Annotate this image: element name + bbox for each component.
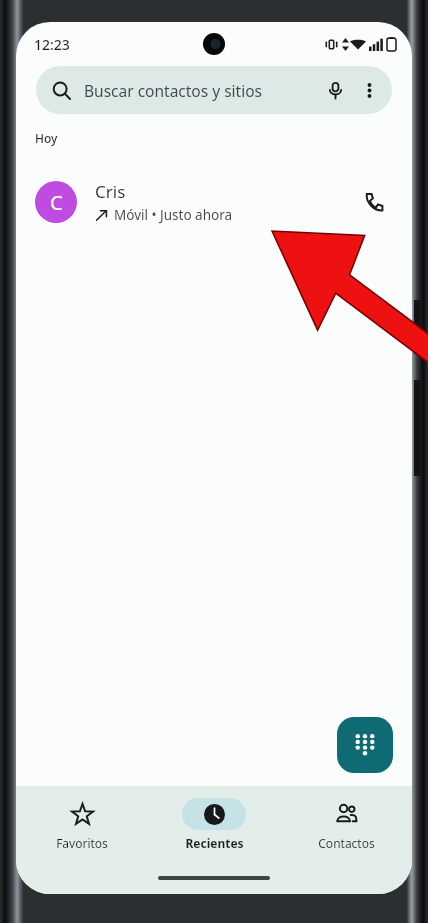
staticText: Cris [95,180,126,203]
button[interactable]: Recientes [148,798,280,851]
button[interactable]: Más opciones [352,73,386,107]
button[interactable]: Favoritos [16,798,148,851]
staticText: Hoy [35,130,58,146]
staticText: Buscar contactos y sitios [84,80,318,101]
button[interactable]: C [16,166,412,238]
button[interactable]: Teclado de marcación [337,717,393,773]
button[interactable]: Buscar contactos y sitios [36,66,392,114]
staticText: Recientes [185,835,244,851]
staticText: Móvil • Justo ahora [114,206,233,224]
button[interactable]: Contactos [280,798,412,851]
button[interactable]: Llamar a Cris [350,178,398,226]
staticText: 12:23 [34,35,70,54]
staticText: Favoritos [56,835,108,851]
button[interactable]: Búsqueda por voz [318,73,352,107]
staticText: Contactos [318,835,375,851]
staticText: C [50,189,63,216]
